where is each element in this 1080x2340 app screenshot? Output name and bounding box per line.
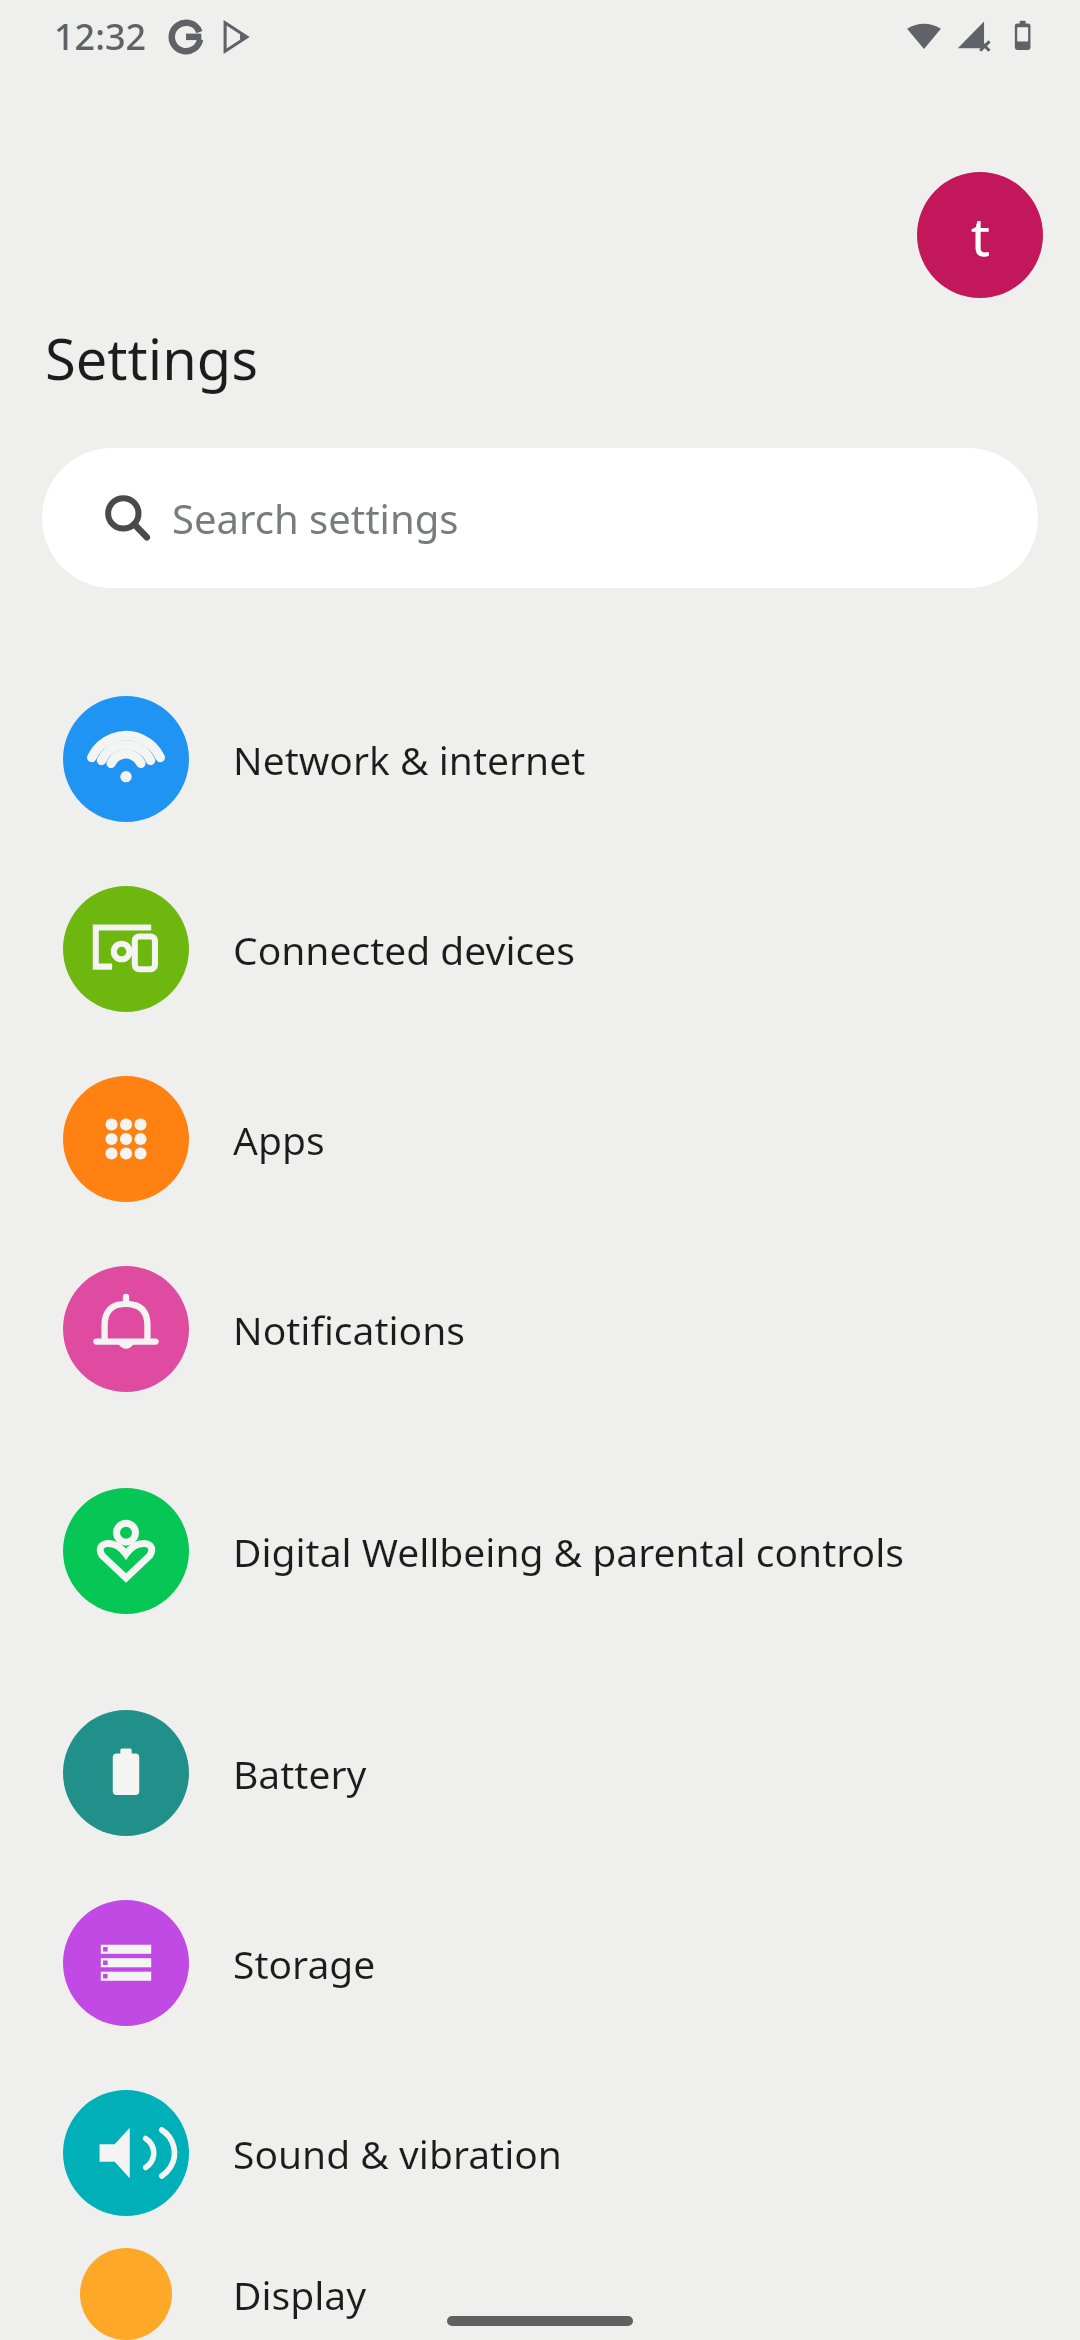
staticText: Sound & vibration	[233, 2127, 562, 2180]
staticText: Apps	[233, 1113, 325, 1166]
button[interactable]: Search settings	[42, 448, 1038, 588]
button[interactable]: Sound & vibration	[0, 2058, 1080, 2248]
staticText: Digital Wellbeing & parental controls	[233, 1525, 904, 1578]
button[interactable]: Network & internet	[0, 664, 1080, 854]
button[interactable]: Apps	[0, 1044, 1080, 1234]
staticText: Battery	[233, 1747, 367, 1800]
staticText: Network & internet	[233, 733, 586, 786]
staticText: 12:32	[54, 12, 147, 61]
staticText: Display	[233, 2268, 367, 2321]
staticText: t	[971, 200, 990, 271]
button[interactable]: Battery	[0, 1678, 1080, 1868]
staticText: Storage	[233, 1937, 376, 1990]
staticText: Settings	[45, 320, 259, 396]
staticText: Connected devices	[233, 923, 575, 976]
button[interactable]: Connected devices	[0, 854, 1080, 1044]
button[interactable]: Storage	[0, 1868, 1080, 2058]
button[interactable]: Digital Wellbeing & parental controls	[0, 1424, 1080, 1678]
staticText: Search settings	[172, 491, 459, 545]
button[interactable]: Display	[0, 2248, 1080, 2340]
staticText: Notifications	[233, 1303, 465, 1356]
button[interactable]: Account	[917, 172, 1043, 298]
button[interactable]: Notifications	[0, 1234, 1080, 1424]
